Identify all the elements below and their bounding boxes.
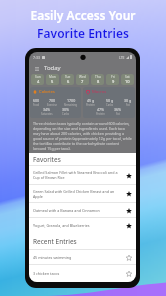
staticText: Mon	[49, 75, 56, 79]
staticText: 1700	[67, 98, 76, 103]
button[interactable]: 45 minutes swimming	[29, 250, 136, 264]
staticText: Exercise	[47, 103, 57, 107]
staticText: Green Salad with Grilled Chicken Breast …	[33, 189, 124, 199]
button[interactable]: Favorite	[124, 206, 133, 215]
button[interactable]: Tue	[61, 74, 74, 85]
staticText: 7	[81, 79, 84, 84]
button[interactable]: Grilled Salmon Fillet with Steamed Brocc…	[29, 166, 136, 184]
staticText: Today	[44, 64, 61, 72]
staticText: Favorite Entries	[37, 25, 129, 41]
staticText: Carbs	[62, 112, 70, 115]
staticText: 34%	[43, 107, 51, 112]
button[interactable]: Wed	[76, 74, 89, 85]
button[interactable]: Favorite	[124, 269, 133, 278]
staticText: Calories	[39, 89, 55, 95]
staticText: Protein	[96, 112, 105, 115]
button[interactable]: Green Salad with Grilled Chicken Breast …	[29, 185, 136, 202]
staticText: 4	[37, 79, 40, 84]
button[interactable]: Favorite	[124, 221, 133, 230]
staticText: Yogurt, Granola, and Blueberries	[33, 223, 124, 228]
staticText: Remaining	[64, 103, 78, 107]
button[interactable]: Sun	[31, 74, 44, 85]
staticText: 45 g	[87, 98, 95, 103]
staticText: 30%	[62, 107, 70, 112]
button[interactable]: Thu	[91, 74, 104, 85]
staticText: Saturates	[41, 112, 53, 115]
staticText: Favorites	[33, 155, 61, 164]
staticText: Wed	[79, 75, 86, 79]
button[interactable]: Menu	[33, 65, 40, 72]
button[interactable]: Yogurt, Granola, and Blueberries	[29, 218, 136, 233]
staticText: 45 minutes swimming	[33, 255, 124, 260]
staticText: 3 chicken tacos	[33, 271, 124, 276]
staticText: Fat	[116, 112, 120, 115]
staticText: Thu	[95, 75, 101, 79]
staticText: Easily Access Your	[30, 7, 136, 23]
staticText: Grilled Salmon Fillet with Steamed Brocc…	[33, 170, 124, 180]
staticText: Recent Entries	[33, 237, 77, 246]
staticText: Fri	[111, 75, 115, 79]
button[interactable]: Fri	[106, 74, 119, 85]
staticText: Sun	[35, 75, 41, 79]
staticText: 6	[67, 79, 70, 84]
staticText: Three chicken tacos typically contain ar…	[33, 121, 132, 151]
staticText: 10	[125, 79, 130, 84]
button[interactable]: Favorite	[124, 171, 133, 180]
staticText: 8	[97, 79, 100, 84]
button[interactable]: Sat	[121, 74, 134, 85]
staticText: LTE	[119, 55, 125, 60]
button[interactable]: 3 chicken tacos	[29, 265, 136, 282]
staticText: Fat	[126, 103, 130, 107]
button[interactable]: Oatmeal with a Banana and Cinnamon	[29, 203, 136, 217]
staticText: Macros	[92, 89, 107, 95]
staticText: Carbs	[106, 103, 114, 107]
staticText: Protein	[86, 103, 95, 107]
staticText: 7:33	[33, 55, 41, 60]
button[interactable]: Favorite	[124, 189, 133, 198]
staticText: 5	[51, 79, 54, 84]
button[interactable]: Mon	[46, 74, 59, 85]
staticText: 47%	[97, 107, 105, 112]
staticText: Oatmeal with a Banana and Cinnamon	[33, 208, 124, 213]
staticText: 600	[33, 98, 40, 103]
staticText: 50 g	[106, 98, 114, 103]
staticText: 9	[112, 79, 115, 84]
staticText: Tue	[65, 75, 71, 79]
staticText: 36%	[114, 107, 122, 112]
staticText: Sat	[125, 75, 130, 79]
staticText: 700	[49, 98, 56, 103]
staticText: 30 g	[124, 98, 132, 103]
button[interactable]: Favorite	[124, 253, 133, 262]
staticText: Food	[33, 103, 40, 107]
